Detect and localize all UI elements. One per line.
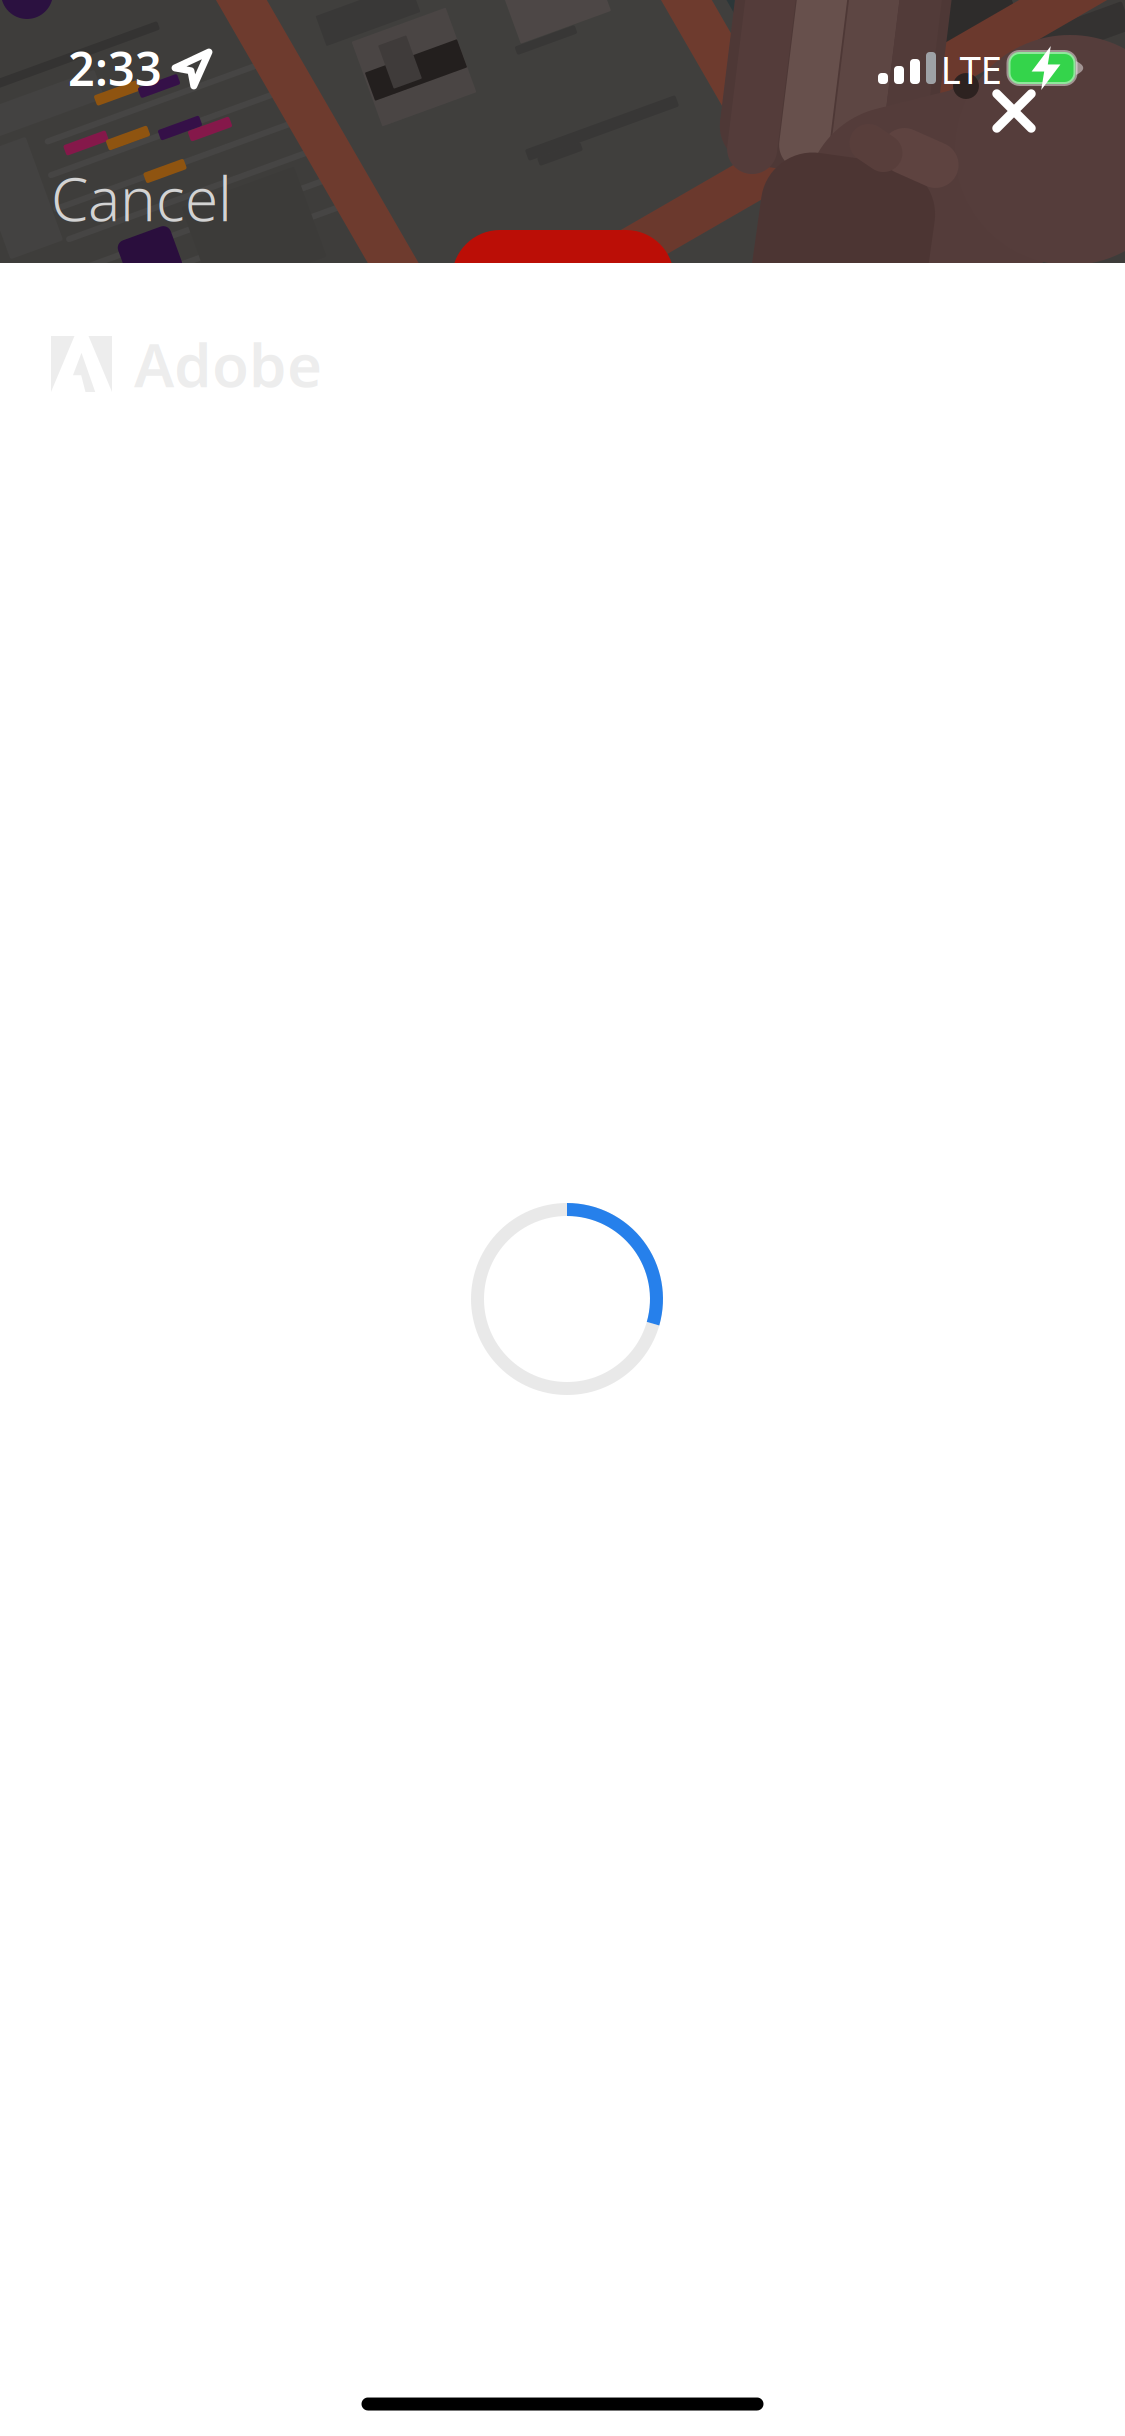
staticText: 2:33: [68, 37, 162, 99]
button[interactable]: Close: [968, 65, 1059, 156]
staticText: Cancel: [51, 158, 232, 238]
button[interactable]: Cancel: [51, 160, 251, 236]
staticText: LTE: [940, 43, 1001, 95]
staticText: Adobe: [134, 324, 322, 404]
